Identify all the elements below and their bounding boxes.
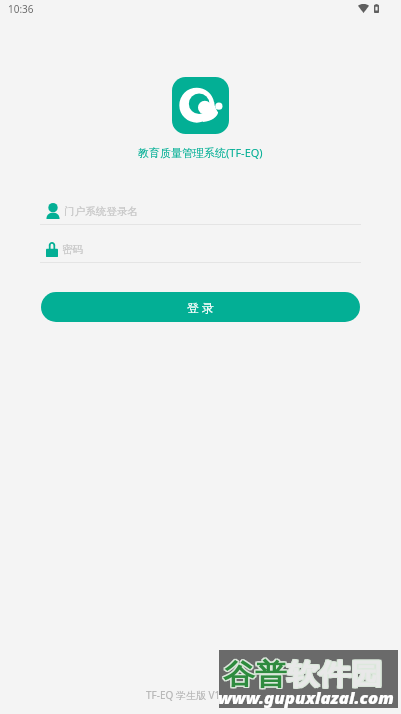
button[interactable]: 门户系统登录名 (40, 198, 361, 224)
staticText: 10:36 (8, 2, 34, 16)
staticText: 登 录 (187, 299, 215, 315)
staticText: 谷普 (224, 657, 288, 693)
button[interactable]: 登 录 (41, 292, 360, 322)
staticText: 软件园 (288, 657, 384, 693)
staticText: 教育质量管理系统(TF-EQ) (138, 145, 263, 160)
staticText: www.gupuxlazal.com (218, 686, 394, 708)
staticText: 谷普 (224, 656, 288, 692)
staticText: 软件园 (287, 656, 382, 692)
staticText: 谷普 (222, 658, 286, 694)
staticText: 谷普 (223, 658, 287, 694)
staticText: 谷普 (224, 658, 288, 694)
staticText: 软件园 (286, 657, 381, 693)
staticText: 谷普 (222, 656, 286, 692)
staticText: 软件园 (288, 658, 384, 694)
staticText: 软件园 (287, 658, 382, 694)
staticText: 谷普 (223, 656, 287, 692)
button[interactable]: 密码 (40, 236, 361, 262)
button[interactable]: TF-EQ 学生版 V1.0.0 (146, 688, 238, 702)
staticText: 谷普 (222, 657, 286, 693)
staticText: 门户系统登录名 (64, 205, 139, 218)
staticText: 软件园 (287, 657, 382, 693)
staticText: 软件园 (288, 656, 384, 692)
staticText: 软件园 (286, 656, 381, 692)
staticText: 谷普 (223, 657, 287, 693)
staticText: 软件园 (286, 658, 381, 694)
staticText: 密码 (62, 243, 84, 256)
